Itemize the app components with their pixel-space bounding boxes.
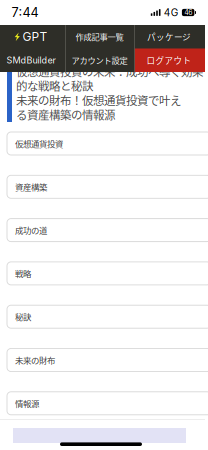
staticText: 秘訣: [15, 311, 31, 323]
staticText: アカウント設定: [71, 54, 127, 66]
staticText: パッケージ: [147, 31, 191, 43]
staticText: ログアウト: [147, 54, 192, 66]
button[interactable]: 成功の道: [7, 219, 208, 242]
button[interactable]: 資産構築: [7, 175, 208, 198]
button[interactable]: 戦略: [7, 262, 208, 285]
staticText: 未来の財布: [15, 354, 55, 366]
button[interactable]: 秘訣: [7, 305, 208, 328]
button[interactable]: 情報源: [7, 392, 208, 415]
staticText: 仮想通貨投資の未来：成功へ導く効果: [16, 63, 203, 79]
button[interactable]: SMdBuilder: [0, 48, 65, 72]
staticText: 作成記事一覧: [75, 31, 123, 43]
staticText: 46: [184, 8, 192, 17]
staticText: 4G: [164, 6, 179, 19]
button[interactable]: パッケージ: [134, 25, 204, 48]
staticText: 資産構築: [15, 181, 47, 193]
staticText: 7:44: [11, 5, 38, 20]
staticText: 情報源: [15, 397, 39, 409]
staticText: 未来の財布！仮想通貨投資で叶え: [16, 92, 181, 108]
button[interactable]: 仮想通貨投資: [7, 132, 208, 155]
staticText: GPT: [22, 29, 47, 44]
button[interactable]: 作成記事一覧: [65, 25, 134, 48]
staticText: 成功の道: [15, 224, 47, 236]
staticText: る資産構築の情報源: [16, 106, 115, 123]
button[interactable]: 未来の財布: [7, 348, 208, 371]
button[interactable]: ログアウト: [134, 48, 204, 72]
button[interactable]: アカウント設定: [65, 48, 134, 72]
staticText: 仮想通貨投資: [15, 137, 63, 150]
staticText: 戦略: [15, 267, 31, 279]
staticText: 的な戦略と秘訣: [16, 77, 93, 94]
button[interactable]: GPT: [0, 25, 65, 48]
staticText: SMdBuilder: [6, 55, 55, 66]
